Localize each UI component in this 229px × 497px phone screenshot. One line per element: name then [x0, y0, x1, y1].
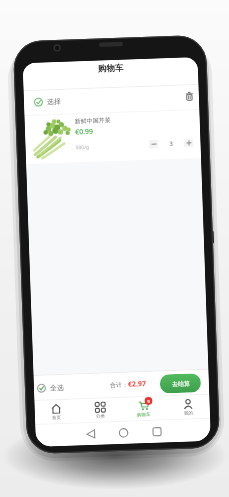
button[interactable]: 9 [121, 396, 166, 421]
button[interactable]: 全选 [37, 383, 64, 393]
button[interactable] [186, 92, 193, 100]
button[interactable]: 我的 [165, 395, 210, 419]
staticText: 去结算 [172, 379, 190, 388]
staticText: 合计： [110, 381, 128, 389]
staticText: 首页 [52, 415, 61, 421]
staticText: 3 [169, 140, 174, 148]
staticText: 新鲜中国芹菜 [74, 116, 111, 125]
button[interactable]: 首页 [34, 399, 78, 424]
staticText: 我的 [184, 410, 193, 417]
button[interactable]: 去结算 [160, 373, 201, 393]
staticText: 9 [147, 399, 151, 404]
staticText: €0.99 [75, 127, 93, 137]
staticText: 选择 [47, 97, 61, 106]
staticText: €2.97 [128, 379, 146, 390]
button[interactable] [148, 139, 159, 149]
button[interactable]: 分类 [77, 398, 122, 422]
staticText: 购物车 [98, 63, 124, 74]
staticText: 全选 [50, 383, 64, 392]
staticText: 500/g [75, 144, 90, 151]
button[interactable] [183, 138, 194, 148]
button[interactable]: 新鲜中国芹菜 [24, 110, 201, 164]
button[interactable]: 选择 [24, 85, 199, 115]
staticText: 分类 [96, 413, 105, 420]
staticText: 购物车 [137, 412, 151, 418]
